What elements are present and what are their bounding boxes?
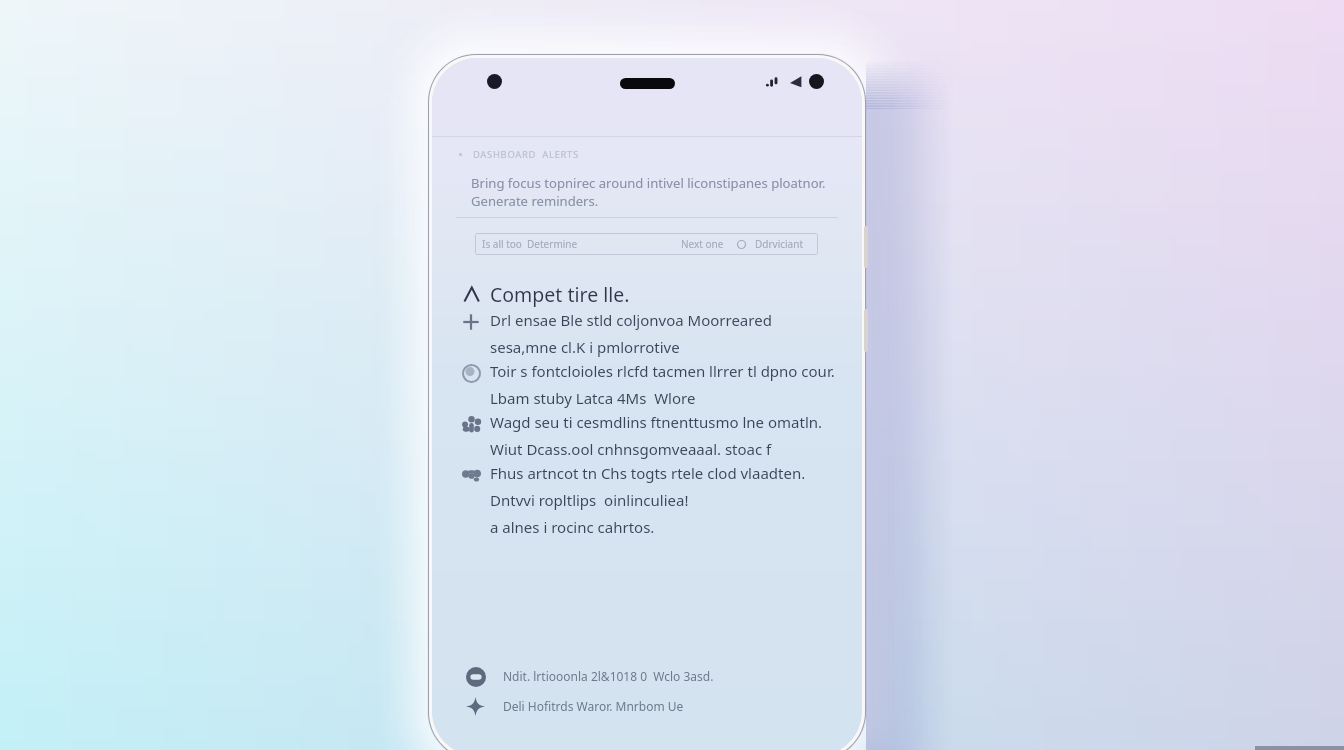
staticText: Is all too Determine xyxy=(482,237,578,251)
staticText: Bring focus topnirec around intivel lico… xyxy=(471,174,826,210)
staticText: Wagd seu ti cesmdlins ftnenttusmo lne om… xyxy=(490,412,823,460)
staticText: Ndit. lrtiooonla 2l&1018 0 Wclo 3asd. xyxy=(503,668,714,684)
button[interactable]: Ndit. lrtiooonla 2l&1018 0 Wclo 3asd. xyxy=(465,665,829,687)
other: Camera xyxy=(809,74,824,89)
button[interactable]: Is all too Determine xyxy=(475,233,818,255)
staticText: Deli Hofitrds Waror. Mnrbom Ue xyxy=(503,698,684,714)
button[interactable]: DASHBOARD ALERTS xyxy=(459,146,842,162)
button[interactable]: Deli Hofitrds Waror. Mnrbom Ue xyxy=(465,695,829,717)
button[interactable]: Drl ensae Ble stld coljonvoa Moorreared … xyxy=(461,310,842,358)
staticText: Fhus artncot tn Chs togts rtele clod vla… xyxy=(490,463,806,538)
other: Power xyxy=(864,309,868,352)
staticText: Toir s fontcloioles rlcfd tacmen llrrer … xyxy=(490,361,835,409)
staticText: Compet tire lle. xyxy=(490,281,630,307)
button[interactable]: Toir s fontcloioles rlcfd tacmen llrrer … xyxy=(461,361,842,409)
staticText: Next one xyxy=(681,237,724,251)
button[interactable]: Fhus artncot tn Chs togts rtele clod vla… xyxy=(461,463,842,538)
staticText: Drl ensae Ble stld coljonvoa Moorreared … xyxy=(490,310,772,358)
button[interactable]: Wagd seu ti cesmdlins ftnenttusmo lne om… xyxy=(461,412,842,460)
other: Volume xyxy=(864,226,868,268)
other: Front camera xyxy=(487,74,502,89)
button[interactable]: Compet tire lle. xyxy=(464,281,842,307)
staticText: Ddrviciant xyxy=(755,237,804,251)
staticText: DASHBOARD ALERTS xyxy=(473,148,579,161)
